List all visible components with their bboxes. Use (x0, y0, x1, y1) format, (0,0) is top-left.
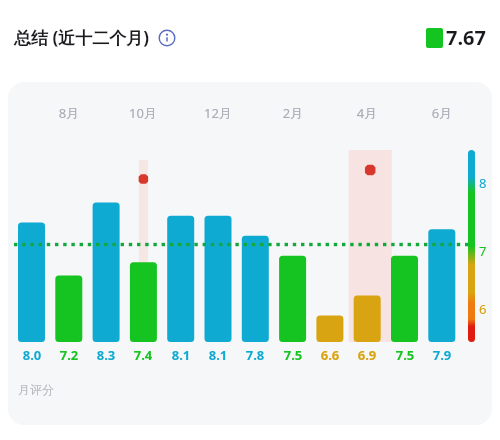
staticText: 12月 (196, 104, 240, 122)
staticText: 7.9 (423, 346, 461, 364)
staticText: 8.0 (13, 346, 51, 364)
staticText: 7.2 (50, 346, 88, 364)
staticText: 6.6 (311, 346, 349, 364)
staticText: 7.4 (124, 346, 162, 364)
button[interactable]: 信息 (158, 29, 176, 47)
staticText: 8.1 (162, 346, 200, 364)
staticText: 8.3 (87, 346, 125, 364)
staticText: 10月 (121, 104, 165, 122)
button[interactable]: 8月 (8, 82, 492, 425)
staticText: 6月 (420, 104, 464, 122)
staticText: 8.1 (199, 346, 237, 364)
staticText: 8 (479, 174, 487, 192)
staticText: 7 (479, 242, 487, 260)
staticText: 7.5 (274, 346, 312, 364)
staticText: 6.9 (348, 346, 386, 364)
staticText: 2月 (271, 104, 315, 122)
staticText: 8月 (47, 104, 91, 122)
staticText: 7.67 (446, 24, 486, 51)
staticText: 6 (479, 300, 487, 318)
staticText: 4月 (345, 104, 389, 122)
staticText: 7.5 (386, 346, 424, 364)
staticText: 月评分 (18, 382, 54, 397)
staticText: 总结 (近十二个月) (14, 26, 149, 49)
staticText: 7.8 (236, 346, 274, 364)
